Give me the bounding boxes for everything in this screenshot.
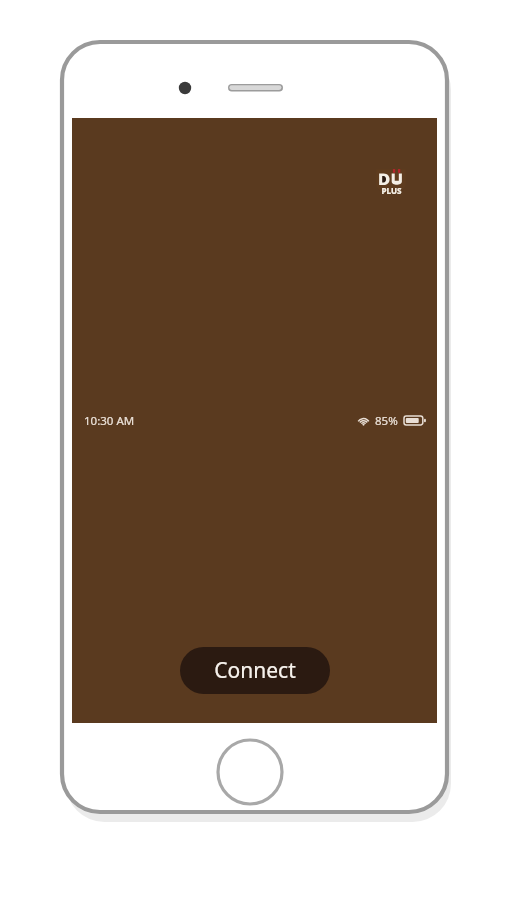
staticText: PLUS: [381, 185, 402, 196]
staticText: Connect: [214, 656, 296, 685]
button[interactable]: DU Plus logo: [374, 166, 408, 200]
staticText: 85%: [375, 413, 398, 429]
staticText: 10:30 AM: [84, 413, 135, 429]
button[interactable]: Connect: [180, 647, 330, 694]
